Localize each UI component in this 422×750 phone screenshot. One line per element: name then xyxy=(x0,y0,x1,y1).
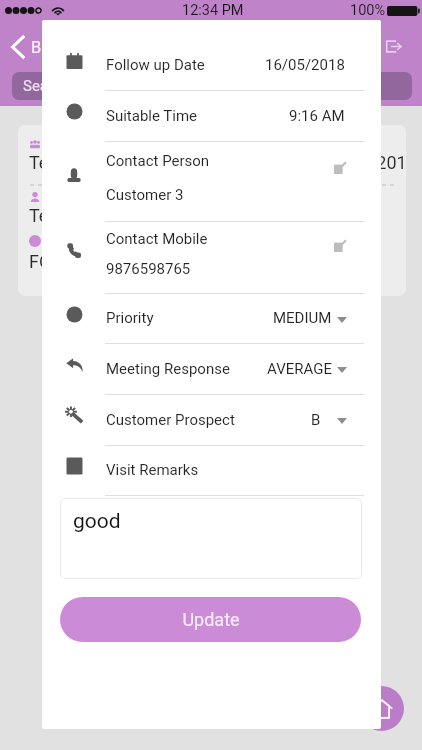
staticText: Suitable Time xyxy=(106,107,198,125)
button[interactable]: Search xyxy=(12,72,412,100)
staticText: 16/05/2018 xyxy=(265,56,345,74)
staticText: Contact Person xyxy=(106,152,210,170)
staticText: good xyxy=(73,509,121,534)
button[interactable]: Meeting Response xyxy=(55,343,365,394)
button[interactable]: Follow up Date xyxy=(55,40,365,90)
staticText: Update xyxy=(182,609,240,630)
button[interactable]: Contact Mobile xyxy=(55,221,365,293)
staticText: Contact Mobile xyxy=(106,230,208,248)
button[interactable]: Team A xyxy=(18,125,406,296)
staticText: Customer Prospect xyxy=(106,411,235,429)
staticText: 100% xyxy=(350,2,386,19)
button[interactable]: Suitable Time xyxy=(55,90,365,141)
button[interactable]: Contact Person xyxy=(55,141,365,221)
staticText: 12:34 PM xyxy=(182,2,244,19)
staticText: 9876598765 xyxy=(106,260,191,278)
staticText: Meeting Response xyxy=(106,360,230,378)
staticText: Team A xyxy=(29,152,91,173)
staticText: FOLLOW UP xyxy=(29,251,126,272)
button[interactable]: Customer Prospect xyxy=(55,394,365,445)
staticText: Back xyxy=(31,38,68,57)
staticText: 9:16 AM xyxy=(289,107,345,125)
button[interactable]: Visit Remarks xyxy=(55,445,365,495)
staticText: Priority xyxy=(106,309,154,327)
staticText: B xyxy=(311,411,321,429)
staticText: 16/05/2018 xyxy=(321,152,406,173)
button[interactable]: Logout xyxy=(375,29,412,64)
staticText: Search xyxy=(23,77,70,95)
staticText: Test xyxy=(29,205,64,226)
button[interactable]: Priority xyxy=(55,293,365,343)
button[interactable]: Home xyxy=(359,686,404,731)
button[interactable]: Back xyxy=(4,30,76,64)
staticText: Follow up Date xyxy=(106,56,205,74)
button[interactable]: Update xyxy=(60,597,361,642)
button[interactable]: good xyxy=(60,498,362,579)
staticText: AVERAGE xyxy=(267,360,332,378)
staticText: MEDIUM xyxy=(273,309,332,327)
staticText: Visit Remarks xyxy=(106,461,199,479)
staticText: Customer 3 xyxy=(106,186,184,204)
